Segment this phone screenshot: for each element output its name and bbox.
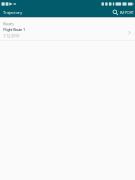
staticText: IMPORT bbox=[119, 10, 133, 15]
button[interactable]: Search bbox=[110, 8, 118, 17]
button[interactable]: Flight Route 1 bbox=[0, 26, 135, 40]
staticText: 7.12.2010 bbox=[3, 33, 19, 38]
staticText: Flight Route 1 bbox=[3, 27, 25, 32]
button[interactable]: IMPORT bbox=[118, 8, 133, 17]
staticText: Routes bbox=[3, 21, 14, 26]
staticText: Trajectory bbox=[3, 10, 22, 15]
